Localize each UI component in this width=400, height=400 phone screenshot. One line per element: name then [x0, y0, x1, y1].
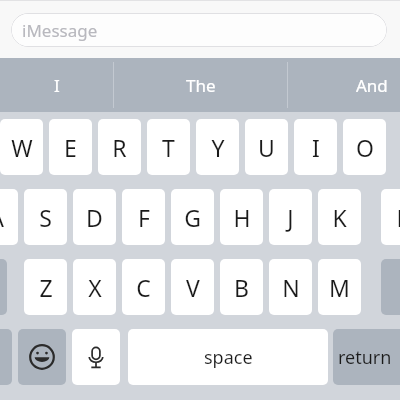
staticText: T	[162, 132, 175, 163]
staticText: space	[204, 345, 253, 370]
button[interactable]: W	[0, 119, 43, 176]
button[interactable]: V	[171, 259, 214, 316]
button[interactable]: Z	[24, 259, 67, 316]
button[interactable]: The	[114, 58, 287, 112]
staticText: G	[184, 202, 201, 233]
button[interactable]: T	[147, 119, 190, 176]
button[interactable]: O	[343, 119, 386, 176]
staticText: A	[0, 202, 4, 233]
button[interactable]: Key	[0, 259, 7, 316]
button[interactable]: Key	[0, 329, 12, 386]
button[interactable]: iMessage	[11, 13, 387, 47]
button[interactable]: G	[171, 189, 214, 246]
staticText: D	[86, 202, 103, 233]
staticText: B	[234, 272, 249, 303]
staticText: Y	[211, 132, 225, 163]
button[interactable]: N	[269, 259, 312, 316]
button[interactable]: R	[98, 119, 141, 176]
button[interactable]: I	[0, 58, 113, 112]
button[interactable]: I	[294, 119, 337, 176]
button[interactable]: M	[318, 259, 361, 316]
button[interactable]: B	[220, 259, 263, 316]
button[interactable]: H	[220, 189, 263, 246]
staticText: O	[356, 132, 374, 163]
button[interactable]: E	[49, 119, 92, 176]
staticText: And	[356, 74, 388, 97]
staticText: S	[39, 202, 52, 233]
staticText: X	[88, 272, 102, 303]
staticText: N	[282, 272, 300, 303]
staticText: The	[186, 74, 216, 97]
button[interactable]: J	[269, 189, 312, 246]
button[interactable]: A	[0, 189, 18, 246]
button[interactable]: Emoji	[18, 329, 66, 386]
button[interactable]: X	[73, 259, 116, 316]
button[interactable]: space	[128, 329, 328, 386]
staticText: F	[138, 202, 150, 233]
button[interactable]: return	[333, 329, 400, 386]
staticText: H	[233, 202, 251, 233]
button[interactable]: L	[381, 189, 400, 246]
staticText: iMessage	[22, 19, 98, 42]
button[interactable]: U	[245, 119, 288, 176]
button[interactable]: And	[288, 58, 400, 112]
button[interactable]: Key	[381, 259, 400, 316]
button[interactable]: S	[24, 189, 67, 246]
button[interactable]: Dictation	[72, 329, 120, 386]
button[interactable]: K	[318, 189, 361, 246]
staticText: E	[64, 132, 77, 163]
button[interactable]: D	[73, 189, 116, 246]
button[interactable]: C	[122, 259, 165, 316]
staticText: return	[338, 345, 392, 370]
button[interactable]: Y	[196, 119, 239, 176]
staticText: K	[332, 202, 347, 233]
staticText: I	[54, 74, 60, 97]
staticText: C	[136, 272, 151, 303]
staticText: I	[312, 132, 320, 163]
button[interactable]: F	[122, 189, 165, 246]
staticText: U	[258, 132, 275, 163]
staticText: V	[186, 272, 200, 303]
staticText: J	[287, 202, 294, 233]
staticText: R	[112, 132, 127, 163]
staticText: Z	[39, 272, 53, 303]
staticText: M	[329, 272, 350, 303]
staticText: L	[396, 202, 400, 233]
staticText: W	[11, 132, 33, 163]
